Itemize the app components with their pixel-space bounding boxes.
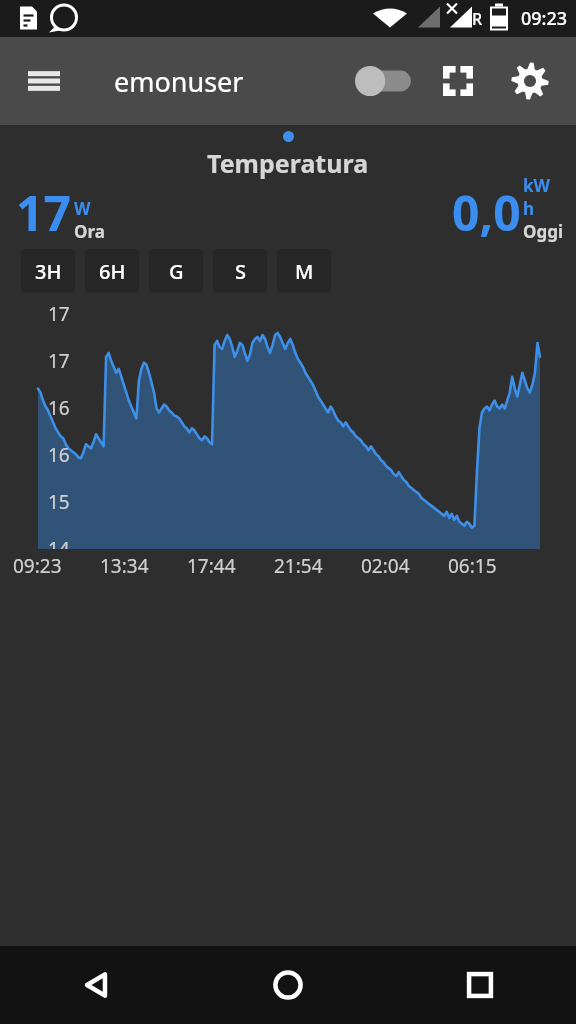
staticText: Oggi xyxy=(523,220,564,243)
staticText: 0,0 xyxy=(452,180,521,245)
staticText: 09:23 xyxy=(521,6,568,31)
staticText: emonuser xyxy=(114,63,244,100)
staticText: Ora xyxy=(74,220,105,243)
staticText: 09:23 xyxy=(13,553,62,579)
button[interactable]: Toggle live update xyxy=(344,53,422,109)
staticText: 21:54 xyxy=(274,553,323,579)
button[interactable]: Recent apps xyxy=(384,946,576,1024)
staticText: 16 xyxy=(48,442,70,468)
button[interactable]: G xyxy=(149,249,203,293)
button[interactable]: S xyxy=(213,249,267,293)
staticText: 17:44 xyxy=(187,553,236,579)
staticText: 3H xyxy=(35,258,62,285)
button[interactable]: Settings xyxy=(494,45,566,117)
staticText: 13:34 xyxy=(100,553,149,579)
staticText: 17 xyxy=(16,180,71,245)
staticText: h xyxy=(523,197,535,220)
staticText: W xyxy=(74,197,91,220)
staticText: Temperatura xyxy=(207,146,369,180)
button[interactable]: 6H xyxy=(85,249,139,293)
staticText: 17 xyxy=(48,348,70,374)
staticText: kW xyxy=(523,174,550,197)
button[interactable]: M xyxy=(277,249,331,293)
staticText: R xyxy=(472,8,483,30)
staticText: 6H xyxy=(99,258,126,285)
staticText: 14 xyxy=(48,536,70,549)
button[interactable]: Home xyxy=(192,946,384,1024)
staticText: 02:04 xyxy=(361,553,410,579)
staticText: 15 xyxy=(48,489,70,515)
staticText: 06:15 xyxy=(448,553,497,579)
staticText: G xyxy=(169,258,184,285)
button[interactable]: Back xyxy=(0,946,192,1024)
staticText: S xyxy=(235,258,246,285)
button[interactable]: Fullscreen xyxy=(422,45,494,117)
staticText: M xyxy=(295,258,314,285)
button[interactable]: 3H xyxy=(21,249,75,293)
button[interactable]: Menu xyxy=(14,51,74,111)
staticText: 16 xyxy=(48,395,70,421)
staticText: 17 xyxy=(48,301,70,327)
